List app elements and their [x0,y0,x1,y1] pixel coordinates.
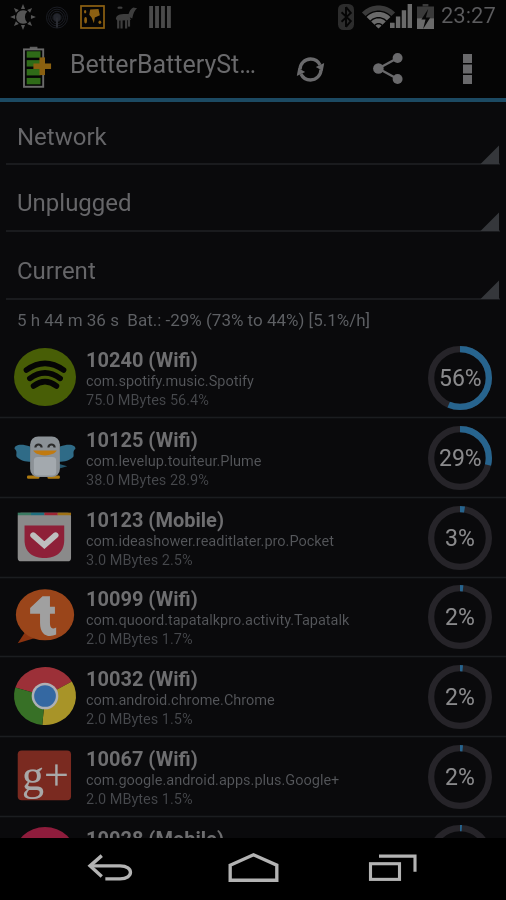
button[interactable]: 10028 (Mobile) [0,817,506,897]
staticText: 29% [439,445,482,472]
staticText: 10067 (Wifi) [86,747,198,770]
staticText: com.quoord.tapatalkpro.activity.Tapatalk [86,612,350,629]
staticText: 5 h 44 m 36 s Bat.: -29% (73% to 44%) [5… [17,310,371,330]
button[interactable]: Share [360,36,416,98]
button[interactable]: Refresh [282,36,338,98]
staticText: 2% [445,684,475,711]
button[interactable]: Home [198,838,308,900]
button[interactable]: Back [58,838,168,900]
staticText: g+ [22,751,69,800]
staticText: com.android.chrome.Chrome [86,692,275,709]
staticText: BetterBatterySt… [70,50,256,79]
button[interactable]: 10240 (Wifi) [0,338,506,418]
staticText: 10032 (Wifi) [86,667,198,690]
staticText: 10125 (Wifi) [86,428,198,451]
staticText: 38.0 MBytes 28.9% [86,472,209,489]
button[interactable]: 10123 (Mobile) [0,498,506,578]
staticText: 2% [445,764,475,791]
staticText: com.levelup.touiteur.Plume [86,453,262,470]
staticText: com.android.providers.Media [86,852,275,869]
button[interactable]: 10125 (Wifi) [0,418,506,498]
staticText: 2.0 MBytes 1.7% [86,631,193,648]
staticText: 10240 (Wifi) [86,348,198,371]
button[interactable]: Network [0,102,506,165]
staticText: 10123 (Mobile) [86,508,224,531]
staticText: 1.0 MBytes 1.0% [86,871,193,888]
staticText: 10099 (Wifi) [86,587,198,610]
button[interactable]: More options [443,36,491,98]
button[interactable]: Current [0,232,506,300]
staticText: 56% [439,365,482,392]
staticText: com.google.android.apps.plus.Google+ [86,772,340,789]
button[interactable]: 10099 (Wifi) [0,577,506,657]
staticText: 10028 (Mobile) [86,827,224,850]
staticText: Unplugged [17,189,132,217]
staticText: 23:27 [441,3,496,29]
staticText: 2.0 MBytes 1.5% [86,711,193,728]
staticText: Current [17,257,96,285]
staticText: 2% [445,604,475,631]
button[interactable]: g+ [0,737,506,817]
staticText: 3.0 MBytes 2.5% [86,552,193,569]
staticText: 2.0 MBytes 1.5% [86,791,193,808]
staticText: Network [17,123,107,151]
staticText: 75.0 MBytes 56.4% [86,392,209,409]
button[interactable]: Recent apps [338,838,448,900]
staticText: com.spotify.music.Spotify [86,373,254,390]
staticText: com.ideashower.readitlater.pro.Pocket [86,533,334,550]
button[interactable]: Unplugged [0,165,506,232]
staticText: 3% [445,525,475,552]
button[interactable]: 10032 (Wifi) [0,657,506,737]
